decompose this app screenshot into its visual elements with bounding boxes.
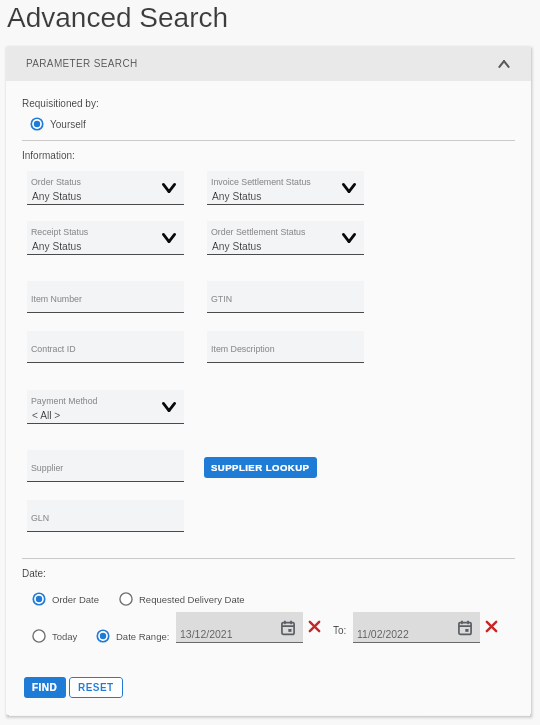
button[interactable]: Invoice Settlement Status (207, 171, 364, 205)
staticText: GLN (31, 513, 50, 523)
button[interactable]: Clear to date (481, 616, 501, 636)
other: Pick date (280, 620, 296, 636)
staticText: To: (333, 625, 347, 636)
staticText: Invoice Settlement Status (211, 177, 311, 187)
button[interactable]: Item Number (27, 281, 184, 313)
staticText: PARAMETER SEARCH (26, 58, 138, 69)
staticText: 11/02/2022 (357, 628, 409, 640)
button[interactable]: Order Date (31, 590, 99, 608)
button[interactable]: Item Description (207, 331, 364, 363)
staticText: Payment Method (31, 396, 98, 406)
staticText: < All > (32, 410, 61, 421)
other: Pick date (457, 620, 473, 636)
staticText: GTIN (211, 294, 233, 304)
staticText: RESET (78, 682, 114, 693)
staticText: Advanced Search (7, 2, 229, 33)
button[interactable]: GTIN (207, 281, 364, 313)
button[interactable]: Date Range: (95, 627, 170, 645)
staticText: Any Status (212, 241, 262, 252)
button[interactable]: SUPPLIER LOOKUP (204, 457, 317, 478)
staticText: Date: (22, 568, 46, 579)
staticText: Order Settlement Status (211, 227, 306, 237)
staticText: Requisitioned by: (22, 98, 99, 109)
staticText: Supplier (31, 463, 64, 473)
staticText: Today (52, 631, 78, 642)
button[interactable]: FIND (24, 677, 66, 698)
staticText: Contract ID (31, 344, 76, 354)
staticText: 13/12/2021 (180, 628, 233, 640)
staticText: Date Range: (116, 631, 170, 642)
staticText: Requested Delivery Date (139, 594, 245, 605)
staticText: Item Number (31, 294, 82, 304)
staticText: Order Status (31, 177, 81, 187)
button[interactable]: Receipt Status (27, 221, 184, 255)
staticText: SUPPLIER LOOKUP (211, 462, 310, 473)
button[interactable]: Yourself (29, 115, 86, 133)
button[interactable]: Supplier (27, 450, 184, 482)
button[interactable]: 13/12/2021 (176, 612, 303, 643)
staticText: Any Status (32, 241, 82, 252)
staticText: Item Description (211, 344, 275, 354)
staticText: Any Status (212, 191, 262, 202)
button[interactable]: Requested Delivery Date (118, 590, 245, 608)
button[interactable]: PARAMETER SEARCH (6, 46, 531, 81)
staticText: Yourself (50, 119, 86, 130)
staticText: Information: (22, 150, 75, 161)
staticText: Receipt Status (31, 227, 89, 237)
button[interactable]: RESET (69, 677, 123, 698)
staticText: Order Date (52, 594, 99, 605)
button[interactable]: Order Settlement Status (207, 221, 364, 255)
other: Collapse section (497, 57, 511, 71)
button[interactable]: Today (31, 627, 78, 645)
button[interactable]: Payment Method (27, 390, 184, 424)
button[interactable]: Order Status (27, 171, 184, 205)
staticText: FIND (32, 682, 58, 693)
button[interactable]: Contract ID (27, 331, 184, 363)
button[interactable]: 11/02/2022 (353, 612, 480, 643)
button[interactable]: GLN (27, 500, 184, 532)
staticText: Any Status (32, 191, 82, 202)
button[interactable]: Clear from date (304, 616, 324, 636)
